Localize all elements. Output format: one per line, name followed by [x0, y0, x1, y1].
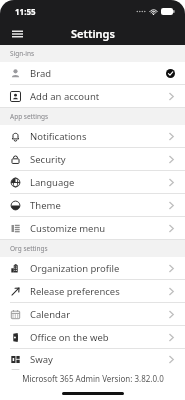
staticText: Brad: [30, 67, 52, 80]
staticText: Settings: [71, 26, 115, 41]
button[interactable]: Language: [0, 171, 185, 193]
staticText: Add an account: [30, 90, 100, 103]
staticText: Notifications: [30, 130, 87, 143]
button[interactable]: Release preferences: [0, 280, 185, 302]
staticText: Organization profile: [30, 262, 120, 275]
button[interactable]: Organization profile: [0, 257, 185, 279]
staticText: Customize menu: [30, 222, 106, 235]
button[interactable]: Office on the web: [0, 326, 185, 348]
staticText: App settings: [10, 112, 49, 121]
staticText: Sway: [30, 353, 53, 366]
staticText: Sign-ins: [10, 49, 35, 58]
button[interactable]: Brad: [0, 62, 185, 84]
staticText: Microsoft 365 Admin Version: 3.82.0.0: [22, 373, 164, 384]
staticText: Language: [30, 176, 75, 189]
staticText: Release preferences: [30, 285, 120, 298]
button[interactable]: Customize menu: [0, 217, 185, 239]
staticText: Security: [30, 153, 66, 166]
button[interactable]: Security: [0, 148, 185, 170]
staticText: Org settings: [10, 244, 48, 253]
button[interactable]: Calendar: [0, 303, 185, 325]
staticText: Theme: [30, 199, 61, 212]
button[interactable]: Menu: [6, 23, 28, 45]
button[interactable]: Sway: [0, 349, 185, 370]
button[interactable]: Add an account: [0, 85, 185, 107]
staticText: Calendar: [30, 308, 71, 321]
button[interactable]: Notifications: [0, 125, 185, 147]
staticText: 11:55: [15, 6, 36, 17]
button[interactable]: Theme: [0, 194, 185, 216]
staticText: Office on the web: [30, 331, 109, 344]
